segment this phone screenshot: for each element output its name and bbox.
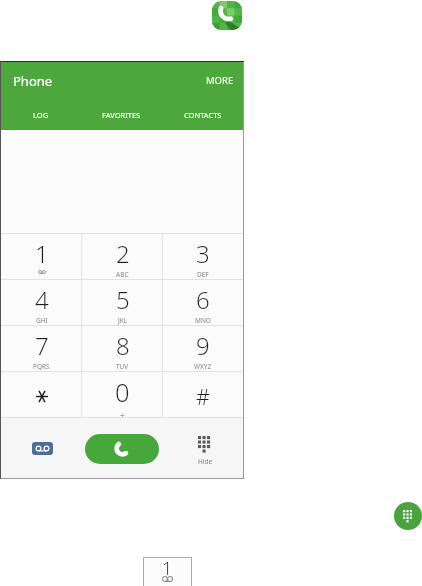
staticText: 9 [196, 329, 210, 362]
staticText: 7 [35, 329, 49, 362]
button[interactable]: 5 [82, 279, 163, 325]
staticText: CONTACTS [184, 110, 222, 120]
staticText: 2 [116, 237, 130, 270]
button[interactable]: 2 [82, 233, 163, 279]
staticText: 5 [116, 283, 130, 316]
button[interactable]: CONTACTS [162, 99, 243, 130]
staticText: PQRS [33, 362, 50, 371]
button[interactable]: Hide [191, 436, 219, 466]
button[interactable]: 6 [163, 279, 243, 325]
button[interactable]: 7 [1, 325, 82, 371]
staticText: # [196, 382, 210, 411]
staticText: MORE [206, 74, 234, 87]
staticText: 3 [196, 237, 210, 270]
button[interactable]: FAVORITES [81, 99, 162, 130]
staticText: LOG [33, 110, 49, 120]
button[interactable] [32, 442, 53, 455]
button[interactable]: 1 [1, 233, 82, 279]
button[interactable] [212, 1, 242, 30]
staticText: TUV [116, 362, 129, 371]
staticText: DEF [197, 270, 209, 279]
button[interactable]: # [163, 371, 243, 417]
button[interactable]: 9 [163, 325, 243, 371]
button[interactable]: 8 [82, 325, 163, 371]
staticText: MNO [195, 316, 211, 325]
button[interactable]: LOG [1, 99, 81, 130]
staticText: 0 [115, 375, 130, 410]
button[interactable]: 0 [82, 371, 163, 417]
staticText: 6 [196, 283, 210, 316]
staticText: JKL [118, 316, 128, 325]
button[interactable] [85, 434, 159, 464]
button[interactable]: 3 [163, 233, 243, 279]
button[interactable] [394, 502, 422, 530]
staticText: WXYZ [194, 362, 212, 371]
button[interactable]: 4 [1, 279, 82, 325]
button[interactable] [1, 371, 82, 417]
staticText: Phone [13, 72, 53, 90]
staticText: 8 [116, 329, 130, 362]
staticText: FAVORITES [102, 110, 141, 120]
staticText: GHI [36, 316, 48, 325]
staticText: ABC [116, 270, 129, 279]
staticText: + [120, 410, 125, 417]
staticText: Hide [198, 457, 213, 466]
button[interactable]: MORE [206, 74, 234, 87]
staticText: 4 [35, 283, 49, 316]
staticText: 1 [162, 556, 173, 581]
staticText: 1 [35, 237, 49, 270]
